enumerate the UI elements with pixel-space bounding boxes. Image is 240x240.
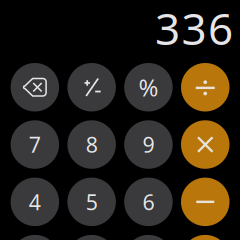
button[interactable]: Plus minus (67, 63, 116, 111)
button[interactable]: 6 (124, 178, 173, 226)
button[interactable]: 3 (124, 235, 173, 240)
staticText: 6 (142, 188, 154, 216)
button[interactable]: Divide (181, 63, 229, 111)
button[interactable]: 2 (67, 235, 116, 240)
button[interactable]: Plus (181, 235, 229, 240)
staticText: 9 (142, 130, 154, 159)
staticText: 5 (86, 188, 98, 216)
button[interactable]: 7 (11, 120, 59, 169)
staticText: % (138, 71, 158, 103)
button[interactable]: Delete (11, 63, 59, 111)
button[interactable]: 8 (67, 120, 116, 169)
button[interactable]: 5 (67, 178, 116, 226)
staticText: 4 (29, 188, 41, 216)
button[interactable]: Multiply (181, 120, 229, 169)
staticText: 7 (29, 130, 41, 159)
button[interactable]: Minus (181, 178, 229, 226)
staticText: 8 (86, 130, 98, 159)
button[interactable]: 1 (11, 235, 59, 240)
button[interactable]: 9 (124, 120, 173, 169)
button[interactable]: 4 (11, 178, 59, 226)
staticText: 336 (155, 0, 233, 57)
button[interactable]: Percent (124, 63, 173, 111)
